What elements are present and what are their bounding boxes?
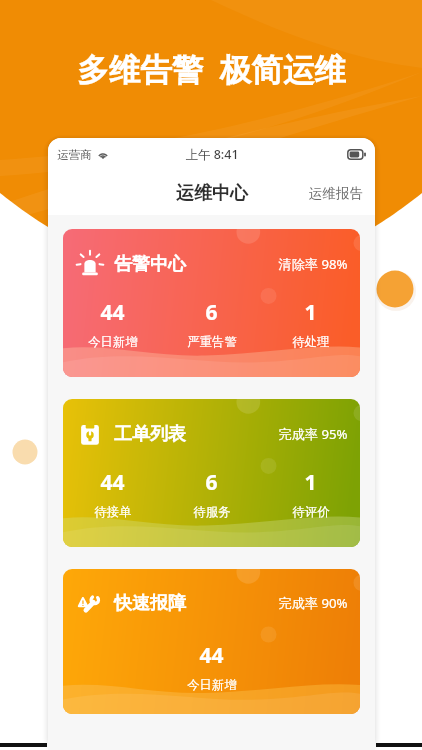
staticText: 告警中心 <box>114 253 186 276</box>
staticText: 运维中心 <box>176 182 248 205</box>
staticText: 完成率 90% <box>278 594 348 612</box>
staticText: 上午 8:41 <box>185 146 239 163</box>
staticText: 多维告警 极简运维 <box>77 47 346 90</box>
button[interactable]: 运维中心 <box>170 176 254 211</box>
staticText: 6 <box>205 298 218 327</box>
staticText: 严重告警 <box>187 334 237 350</box>
staticText: 工单列表 <box>114 423 186 446</box>
button[interactable]: 快速报障 <box>63 569 360 714</box>
staticText: 6 <box>205 468 218 497</box>
staticText: 清除率 98% <box>278 255 348 273</box>
staticText: 待接单 <box>94 504 132 520</box>
staticText: 待处理 <box>292 334 330 350</box>
staticText: 待服务 <box>193 504 231 520</box>
button[interactable]: 工单列表 <box>63 399 360 547</box>
staticText: 1 <box>304 298 317 327</box>
button[interactable]: 运维报告 <box>297 177 375 210</box>
staticText: 快速报障 <box>114 592 186 615</box>
staticText: 44 <box>100 298 125 327</box>
staticText: 待评价 <box>292 504 330 520</box>
staticText: 运维报告 <box>309 185 363 202</box>
staticText: 运营商 <box>57 148 92 162</box>
staticText: 1 <box>304 468 317 497</box>
staticText: 今日新增 <box>187 677 237 693</box>
staticText: 44 <box>100 468 125 497</box>
staticText: 44 <box>199 641 224 670</box>
staticText: 今日新增 <box>88 334 138 350</box>
button[interactable]: 告警中心 <box>63 229 360 377</box>
staticText: 完成率 95% <box>278 425 348 443</box>
